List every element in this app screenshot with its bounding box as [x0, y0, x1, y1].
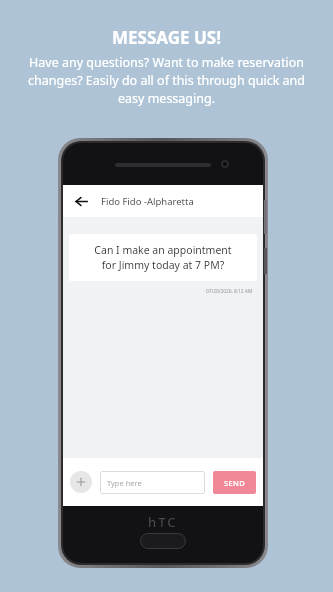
button[interactable]: Add attachment [70, 471, 92, 493]
staticText: 07/20/2020, 8:12 AM [206, 288, 253, 295]
staticText: Have any questions? Want to make reserva… [16, 54, 317, 107]
staticText: Type here [107, 478, 142, 488]
staticText: hTC [148, 513, 178, 531]
button[interactable]: Can I make an appointment for Jimmy toda… [69, 234, 257, 281]
other: Home [140, 533, 186, 549]
staticText: Fido Fido -Alpharetta [101, 195, 194, 208]
staticText: MESSAGE US! [112, 26, 221, 49]
staticText: Can I make an appointment for Jimmy toda… [94, 243, 232, 272]
button[interactable]: SEND [213, 471, 256, 494]
staticText: SEND [224, 478, 246, 488]
button[interactable]: Type here [100, 471, 205, 494]
button[interactable]: Back [69, 189, 93, 213]
